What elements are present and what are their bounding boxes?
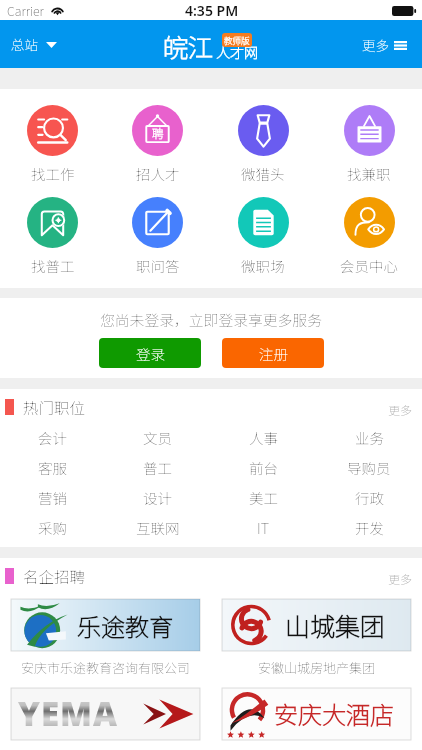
button[interactable]: 聘 <box>105 100 210 184</box>
button[interactable]: 会计 <box>0 424 105 451</box>
staticText: 找工作 <box>31 163 75 184</box>
staticText: 更多 <box>362 35 389 55</box>
staticText: 安庆市乐途教育咨询有限公司 <box>21 658 191 677</box>
staticText: 更多 <box>388 570 413 587</box>
staticText: 安徽山城房地产集团 <box>258 658 376 677</box>
staticText: IT <box>257 517 270 538</box>
button[interactable]: YEMA <box>11 688 200 750</box>
staticText: 找普工 <box>31 255 75 276</box>
staticText: 总站 <box>11 34 38 54</box>
staticText: 普工 <box>143 457 172 478</box>
button[interactable]: 更多 <box>386 568 415 589</box>
staticText: 文员 <box>143 427 172 448</box>
staticText: 营销 <box>38 487 67 508</box>
button[interactable]: 采购 <box>0 514 105 541</box>
button[interactable]: 业务 <box>316 424 422 451</box>
button[interactable]: 更多 <box>358 31 411 59</box>
staticText: 采购 <box>38 517 67 538</box>
button[interactable]: 总站 <box>7 30 61 58</box>
button[interactable]: 更多 <box>386 399 415 420</box>
staticText: 招人才 <box>136 163 180 184</box>
button[interactable]: 营销 <box>0 484 105 511</box>
staticText: 人事 <box>249 427 278 448</box>
button[interactable]: 客服 <box>0 454 105 481</box>
staticText: 注册 <box>259 343 288 364</box>
button[interactable]: 找工作 <box>0 100 105 184</box>
button[interactable]: 职问答 <box>105 192 210 276</box>
button[interactable]: 行政 <box>316 484 422 511</box>
button[interactable]: 人事 <box>210 424 316 451</box>
button[interactable]: 乐途教育 <box>11 599 200 677</box>
staticText: 找兼职 <box>347 163 391 184</box>
staticText: 微职场 <box>241 255 285 276</box>
button[interactable]: 微猎头 <box>210 100 316 184</box>
staticText: 聘 <box>152 125 164 142</box>
button[interactable]: 找兼职 <box>316 100 422 184</box>
button[interactable]: 找普工 <box>0 192 105 276</box>
button[interactable]: 注册 <box>222 338 324 368</box>
staticText: 乐途教育 <box>77 608 173 643</box>
button[interactable]: 登录 <box>99 338 201 368</box>
button[interactable]: 设计 <box>105 484 210 511</box>
staticText: 客服 <box>38 457 67 478</box>
staticText: 会计 <box>38 427 67 448</box>
staticText: 行政 <box>355 487 384 508</box>
staticText: 您尚未登录，立即登录享更多服务 <box>100 309 322 330</box>
button[interactable]: 名企招聘 <box>5 565 90 587</box>
staticText: 业务 <box>355 427 384 448</box>
staticText: 导购员 <box>347 457 391 478</box>
button[interactable]: 互联网 <box>105 514 210 541</box>
staticText: 微猎头 <box>241 163 285 184</box>
staticText: 安庆大酒店 <box>274 696 394 731</box>
staticText: 登录 <box>136 343 165 364</box>
button[interactable]: 山城集团 <box>222 599 411 677</box>
button[interactable]: 美工 <box>210 484 316 511</box>
button[interactable]: 导购员 <box>316 454 422 481</box>
button[interactable]: 开发 <box>316 514 422 541</box>
staticText: 4:35 PM <box>185 1 239 20</box>
staticText: 美工 <box>249 487 278 508</box>
staticText: 设计 <box>143 487 172 508</box>
button[interactable]: IT <box>210 514 316 541</box>
button[interactable]: 前台 <box>210 454 316 481</box>
staticText: 开发 <box>355 517 384 538</box>
staticText: 教师版 <box>224 34 250 46</box>
staticText: 山城集团 <box>285 607 386 643</box>
button[interactable]: 微职场 <box>210 192 316 276</box>
staticText: Carrier <box>7 1 44 19</box>
staticText: 名企招聘 <box>23 565 86 587</box>
button[interactable]: 热门职位 <box>5 396 90 418</box>
button[interactable]: 安庆大酒店 <box>222 688 411 750</box>
button[interactable]: 会员中心 <box>316 192 422 276</box>
staticText: 人才网 <box>216 42 258 62</box>
staticText: 互联网 <box>136 517 180 538</box>
staticText: 热门职位 <box>23 396 86 418</box>
staticText: 皖江 <box>163 28 214 64</box>
staticText: 前台 <box>249 457 278 478</box>
staticText: 更多 <box>388 401 413 418</box>
staticText: YEMA <box>18 691 118 736</box>
button[interactable]: 文员 <box>105 424 210 451</box>
button[interactable]: 普工 <box>105 454 210 481</box>
other: Menu <box>394 41 407 50</box>
staticText: 会员中心 <box>340 255 398 276</box>
staticText: 职问答 <box>136 255 180 276</box>
